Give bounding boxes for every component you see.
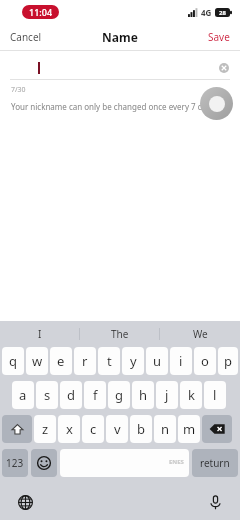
button[interactable]: q [2,347,24,375]
staticText: t [107,352,112,370]
button[interactable]: a [12,381,34,409]
staticText: h [139,386,148,404]
staticText: 123 [6,456,24,470]
staticText: a [19,386,27,404]
button[interactable]: e [50,347,72,375]
button[interactable]: u [146,347,168,375]
button[interactable]: w [26,347,48,375]
staticText: z [42,420,49,438]
button[interactable]: h [132,381,154,409]
staticText: f [93,386,98,404]
staticText: 7/30 [11,85,26,95]
staticText: Cancel [10,30,42,44]
button[interactable]: y [122,347,144,375]
button[interactable]: g [108,381,130,409]
staticText: Name [102,29,138,45]
button[interactable]: Backspace [202,415,232,443]
staticText: j [165,386,169,404]
button[interactable]: r [74,347,96,375]
staticText: We [193,327,208,341]
button[interactable]: c [82,415,104,443]
staticText: l [213,386,217,404]
staticText: return [200,456,230,470]
button[interactable]: b [130,415,152,443]
button[interactable]: I [0,321,80,347]
button[interactable]: d [60,381,82,409]
staticText: s [44,386,51,404]
staticText: ENES [169,458,184,466]
button[interactable]: j [156,381,178,409]
button[interactable]: Assistive touch [200,87,233,120]
staticText: k [188,386,195,404]
staticText: 4G [201,7,212,18]
staticText: x [66,420,73,438]
button[interactable]: 123 [2,449,28,477]
staticText: q [9,352,17,370]
staticText: Your nickname can only be changed once e… [11,101,218,112]
button[interactable]: l [204,381,226,409]
button[interactable]: Voice input [204,491,226,513]
button[interactable]: t [98,347,120,375]
staticText: v [114,420,121,438]
button[interactable]: return [192,449,238,477]
button[interactable]: Cancel [0,24,52,50]
staticText: 28 [219,9,226,17]
staticText: 11:04 [29,6,53,18]
button[interactable]: p [218,347,238,375]
button[interactable]: Emoji [31,449,57,477]
button[interactable]: i [170,347,192,375]
staticText: g [115,386,123,404]
staticText: y [130,352,137,370]
staticText: e [57,352,65,370]
button[interactable]: We [160,321,240,347]
staticText: i [179,352,183,370]
button[interactable]: n [154,415,176,443]
staticText: c [90,420,97,438]
button[interactable]: Space [60,449,189,477]
button[interactable]: The [80,321,160,347]
button[interactable]: v [106,415,128,443]
staticText: p [224,352,232,370]
button[interactable]: m [178,415,200,443]
button[interactable]: Shift [2,415,32,443]
button[interactable]: x [58,415,80,443]
staticText: b [137,420,145,438]
staticText: d [67,386,75,404]
button[interactable]: Save [198,24,240,50]
button[interactable]: Change keyboard language [14,491,36,513]
staticText: n [161,420,170,438]
staticText: w [32,352,43,370]
staticText: Save [208,30,230,44]
button[interactable]: o [194,347,216,375]
staticText: r [82,352,88,370]
button[interactable]: s [36,381,58,409]
staticText: I [38,327,42,341]
staticText: m [183,420,196,438]
button[interactable]: f [84,381,106,409]
staticText: The [111,327,129,341]
button[interactable]: k [180,381,202,409]
button[interactable]: Clear text [216,60,232,76]
staticText: o [201,352,209,370]
button[interactable]: z [34,415,56,443]
staticText: u [153,352,162,370]
